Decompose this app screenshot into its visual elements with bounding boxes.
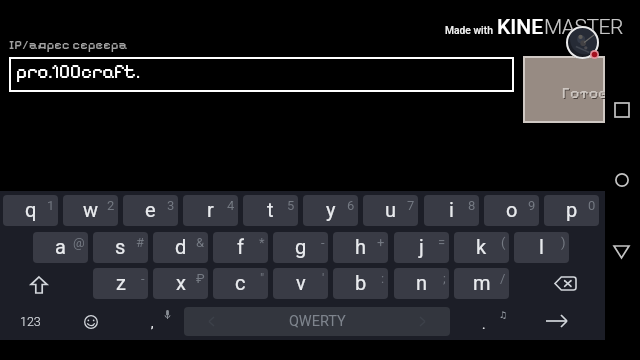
staticText: @ [73,235,85,250]
staticText: n [416,271,428,294]
button[interactable]: h [333,232,388,263]
staticText: p [566,198,578,221]
button[interactable]: Home [615,173,629,187]
button[interactable]: e [123,195,178,226]
button[interactable]: , [140,310,164,334]
button[interactable]: s [93,232,148,263]
staticText: ' [322,271,325,286]
staticText: 7 [407,198,415,213]
button[interactable]: Готово [525,58,603,121]
button[interactable]: Enter [531,307,581,335]
staticText: , [151,315,154,330]
staticText: : [381,271,385,286]
button[interactable]: g [273,232,328,263]
staticText: ₽ [196,271,205,286]
button[interactable]: y [303,195,358,226]
button[interactable]: z [93,268,148,299]
staticText: ; [443,271,446,286]
staticText: 1 [47,198,55,213]
staticText: e [145,198,156,221]
staticText: o [506,198,518,221]
staticText: MASTER [544,15,623,40]
staticText: 3 [167,198,175,213]
button[interactable]: Backspace [544,268,586,299]
button[interactable]: p [544,195,599,226]
staticText: - [141,271,145,286]
staticText: y [326,198,336,221]
staticText: v [296,271,306,294]
button[interactable]: c [213,268,268,299]
button[interactable]: n [394,268,449,299]
staticText: ) [561,235,566,250]
staticText: 5 [287,198,295,213]
button[interactable]: Profile [566,26,599,59]
staticText: z [116,271,126,294]
staticText: d [175,235,187,258]
staticText: = [438,235,446,250]
staticText: Готово [563,84,605,103]
button[interactable]: k [454,232,509,263]
button[interactable]: o [484,195,539,226]
button[interactable]: QWERTY [184,307,450,336]
staticText: m [473,271,491,294]
button[interactable]: Emoji [77,308,104,335]
staticText: 6 [347,198,355,213]
staticText: * [259,235,265,250]
staticText: / [500,271,506,286]
staticText: 8 [468,198,476,213]
staticText: Готово [562,83,605,102]
staticText: i [449,198,454,221]
button[interactable]: Back [614,246,629,258]
button[interactable]: x [153,268,208,299]
button[interactable]: l [514,232,569,263]
staticText: 123 [20,314,41,329]
staticText: c [235,271,246,294]
staticText: & [196,235,205,250]
button[interactable]: d [153,232,208,263]
staticText: QWERTY [289,313,346,330]
staticText: " [260,271,265,286]
staticText: Made with [445,24,493,36]
staticText: 4 [227,198,235,213]
button[interactable]: . [472,312,496,336]
button[interactable]: f [213,232,268,263]
staticText: w [83,198,99,221]
staticText: ♫ [499,310,508,320]
button[interactable]: v [273,268,328,299]
staticText: ( [501,235,506,250]
staticText: - [321,235,325,250]
staticText: IP/адрес сервера [9,37,128,52]
staticText: t [267,198,274,221]
button[interactable]: t [243,195,298,226]
button[interactable]: b [333,268,388,299]
button[interactable]: r [183,195,238,226]
button[interactable]: pro.100craft. [11,59,512,90]
staticText: k [476,235,487,258]
button[interactable]: u [363,195,418,226]
staticText: q [25,198,37,221]
staticText: g [295,235,307,258]
button[interactable]: a [33,232,88,263]
button[interactable]: m [454,268,509,299]
button[interactable]: q [3,195,58,226]
button[interactable]: 123 [14,308,47,335]
staticText: 2 [107,198,115,213]
staticText: u [385,198,397,221]
button[interactable]: w [63,195,118,226]
button[interactable]: i [424,195,479,226]
button[interactable]: j [394,232,449,263]
staticText: l [539,235,544,258]
staticText: KINE [497,15,544,40]
button[interactable]: Shift [18,269,60,300]
staticText: h [355,235,367,258]
staticText: . [482,317,486,332]
button[interactable]: Recents [615,103,629,117]
staticText: a [55,235,66,258]
staticText: j [419,235,424,258]
staticText: 0 [588,198,596,213]
staticText: + [377,235,385,250]
staticText: x [176,271,186,294]
staticText: # [136,235,145,250]
staticText: pro.100craft. [16,61,141,83]
staticText: 9 [528,198,536,213]
